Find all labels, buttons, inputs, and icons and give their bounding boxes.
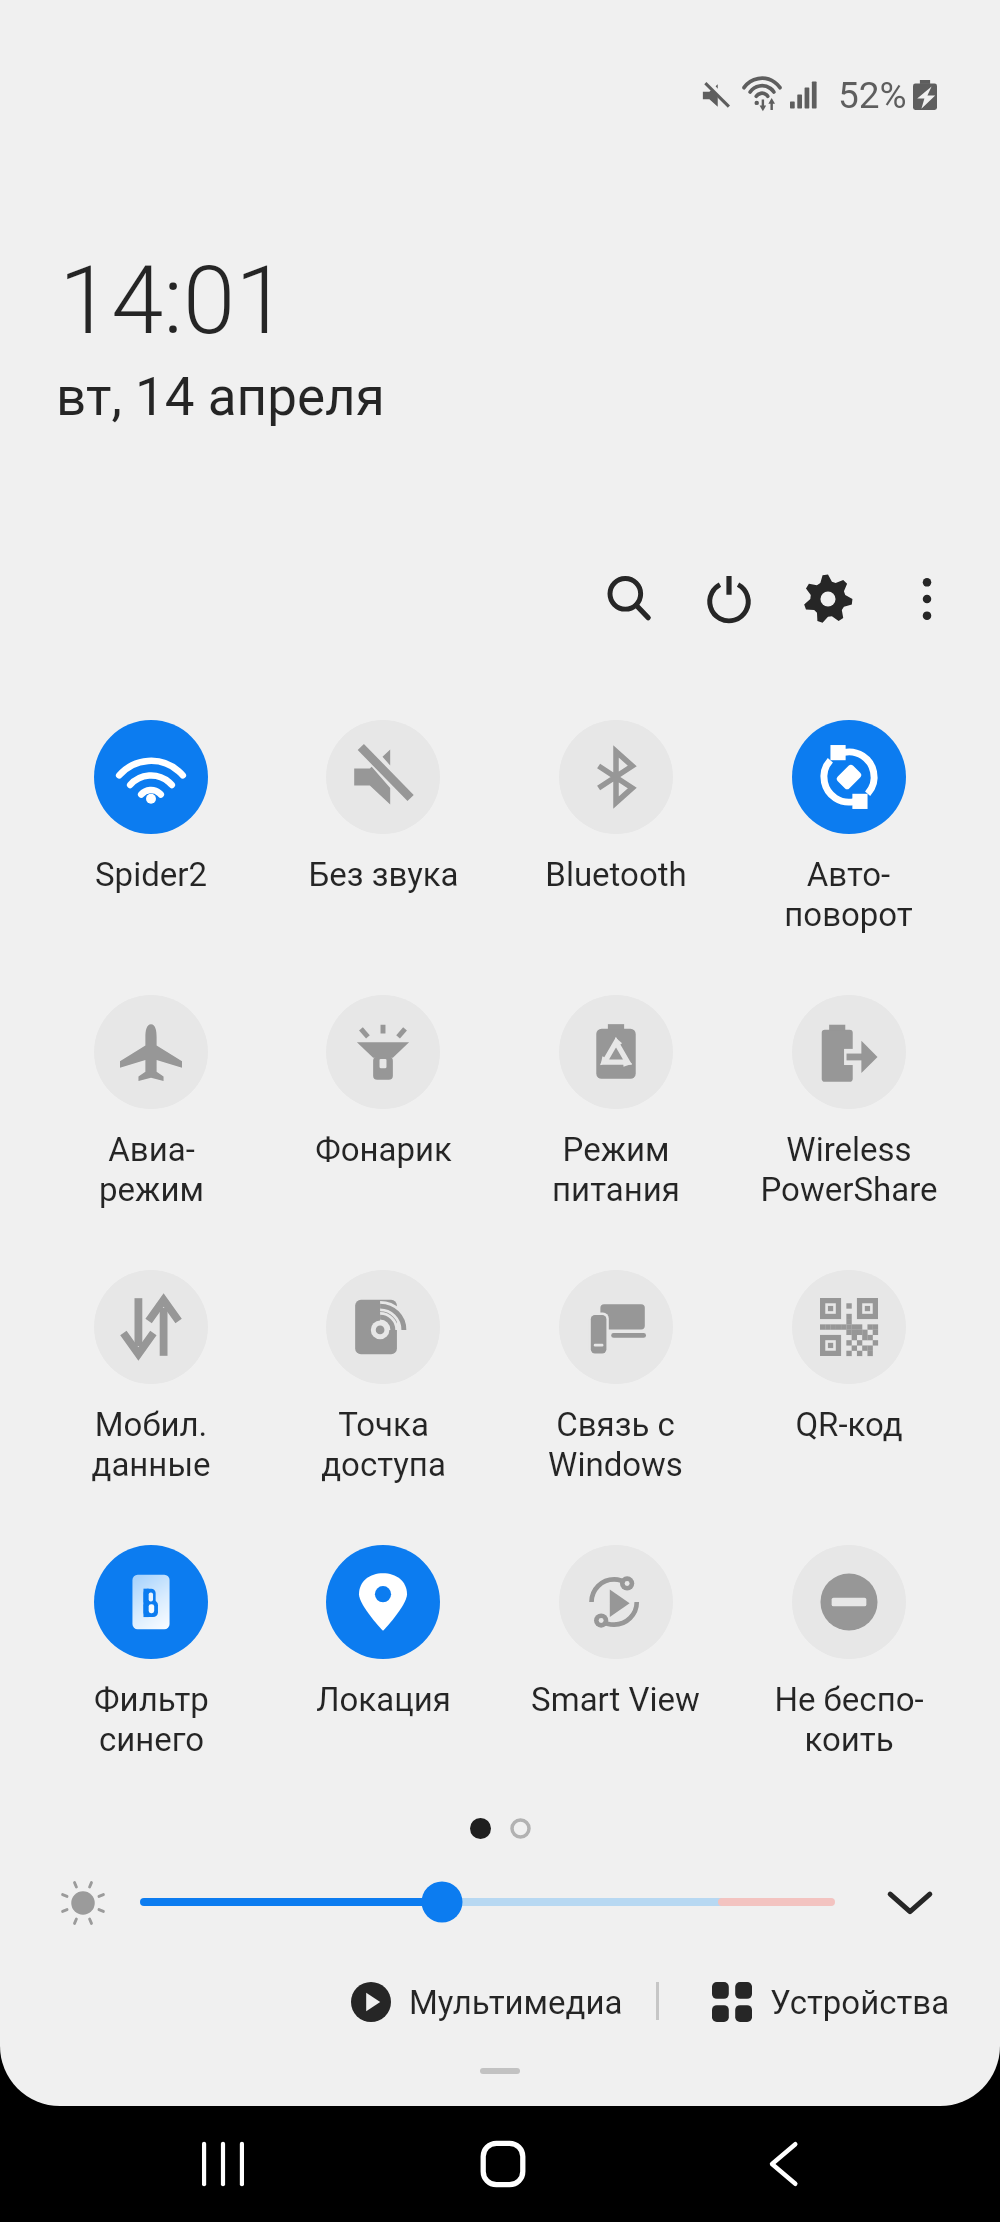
staticText: Режим питания [552, 1130, 680, 1210]
button[interactable]: Мобил. данные [35, 1270, 267, 1545]
button[interactable]: Мультимедиа [343, 1974, 631, 2030]
staticText: Wireless PowerShare [760, 1130, 938, 1210]
staticText: Smart View [531, 1680, 700, 1719]
staticText: вт, 14 апреля [56, 366, 385, 428]
button[interactable]: Recents [183, 2106, 263, 2222]
button[interactable]: Авиа- режим [35, 995, 267, 1270]
button[interactable]: Spider2 [35, 720, 267, 995]
button[interactable]: Фонарик [267, 995, 499, 1270]
button[interactable]: More options [897, 569, 957, 629]
button[interactable]: Back [743, 2106, 823, 2222]
button[interactable]: Без звука [267, 720, 499, 995]
staticText: Фонарик [315, 1130, 452, 1169]
staticText: Без звука [308, 855, 459, 894]
staticText: Устройства [770, 1983, 950, 2022]
button[interactable]: Локация [267, 1545, 499, 1820]
button[interactable]: Settings [798, 569, 858, 629]
button[interactable]: Brightness slider [134, 1872, 841, 1932]
button[interactable]: Wireless PowerShare [732, 995, 965, 1270]
button[interactable]: Не беспо- коить [732, 1545, 965, 1820]
staticText: Мультимедиа [409, 1983, 623, 2022]
staticText: Не беспо- коить [774, 1680, 924, 1760]
button[interactable]: Bluetooth [499, 720, 732, 995]
staticText: Связь с Windows [548, 1405, 683, 1485]
button[interactable]: Авто- поворот [732, 720, 965, 995]
button[interactable]: Точка доступа [267, 1270, 499, 1545]
button[interactable]: Home [463, 2106, 543, 2222]
button[interactable]: QR-код [732, 1270, 965, 1545]
staticText: Мобил. данные [91, 1405, 211, 1485]
staticText: Точка доступа [321, 1405, 446, 1485]
staticText: 52% [838, 74, 907, 117]
button[interactable]: Фильтр синего [35, 1545, 267, 1820]
button[interactable]: Expand [876, 1868, 944, 1936]
button[interactable]: Smart View [499, 1545, 732, 1820]
button[interactable]: Brightness [52, 1872, 114, 1934]
staticText: Авто- поворот [784, 855, 913, 935]
staticText: Bluetooth [545, 855, 687, 894]
button[interactable]: Связь с Windows [499, 1270, 732, 1545]
staticText: QR-код [795, 1405, 903, 1444]
staticText: Авиа- режим [99, 1130, 204, 1210]
button[interactable]: Search [600, 569, 660, 629]
button[interactable]: Режим питания [499, 995, 732, 1270]
button[interactable]: Устройства [704, 1974, 958, 2030]
staticText: Spider2 [95, 855, 207, 894]
staticText: Локация [316, 1680, 451, 1719]
staticText: 14:01 [59, 246, 288, 356]
button[interactable]: Power [699, 569, 759, 629]
staticText: Фильтр синего [94, 1680, 209, 1760]
